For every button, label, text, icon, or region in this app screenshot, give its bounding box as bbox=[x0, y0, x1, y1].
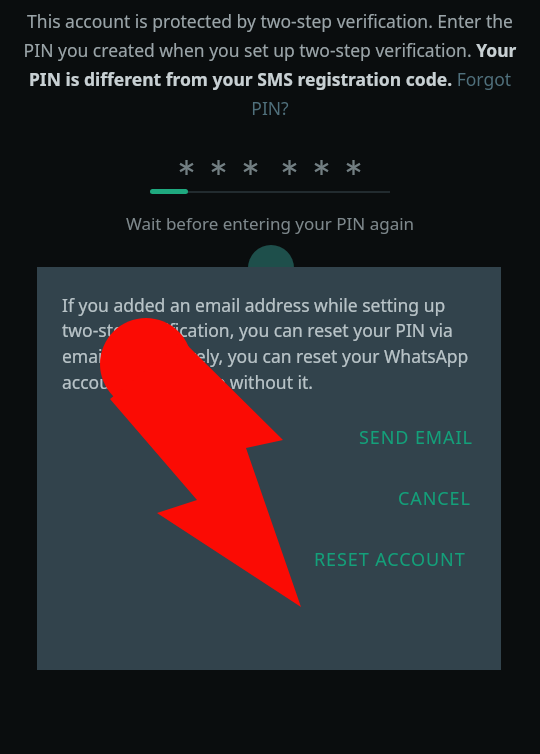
button[interactable]: SEND EMAIL bbox=[37, 419, 501, 456]
staticText: CANCEL bbox=[398, 486, 471, 511]
staticText: SEND EMAIL bbox=[359, 425, 473, 450]
button[interactable]: CANCEL bbox=[37, 480, 501, 517]
staticText: This account is protected by two-step ve… bbox=[16, 9, 524, 120]
staticText: Wait before entering your PIN again bbox=[0, 212, 540, 235]
staticText: If you added an email address while sett… bbox=[62, 293, 479, 395]
other: Pointer arrow bbox=[0, 0, 540, 754]
staticText: RESET ACCOUNT bbox=[314, 547, 466, 572]
button[interactable]: RESET ACCOUNT bbox=[37, 541, 501, 578]
